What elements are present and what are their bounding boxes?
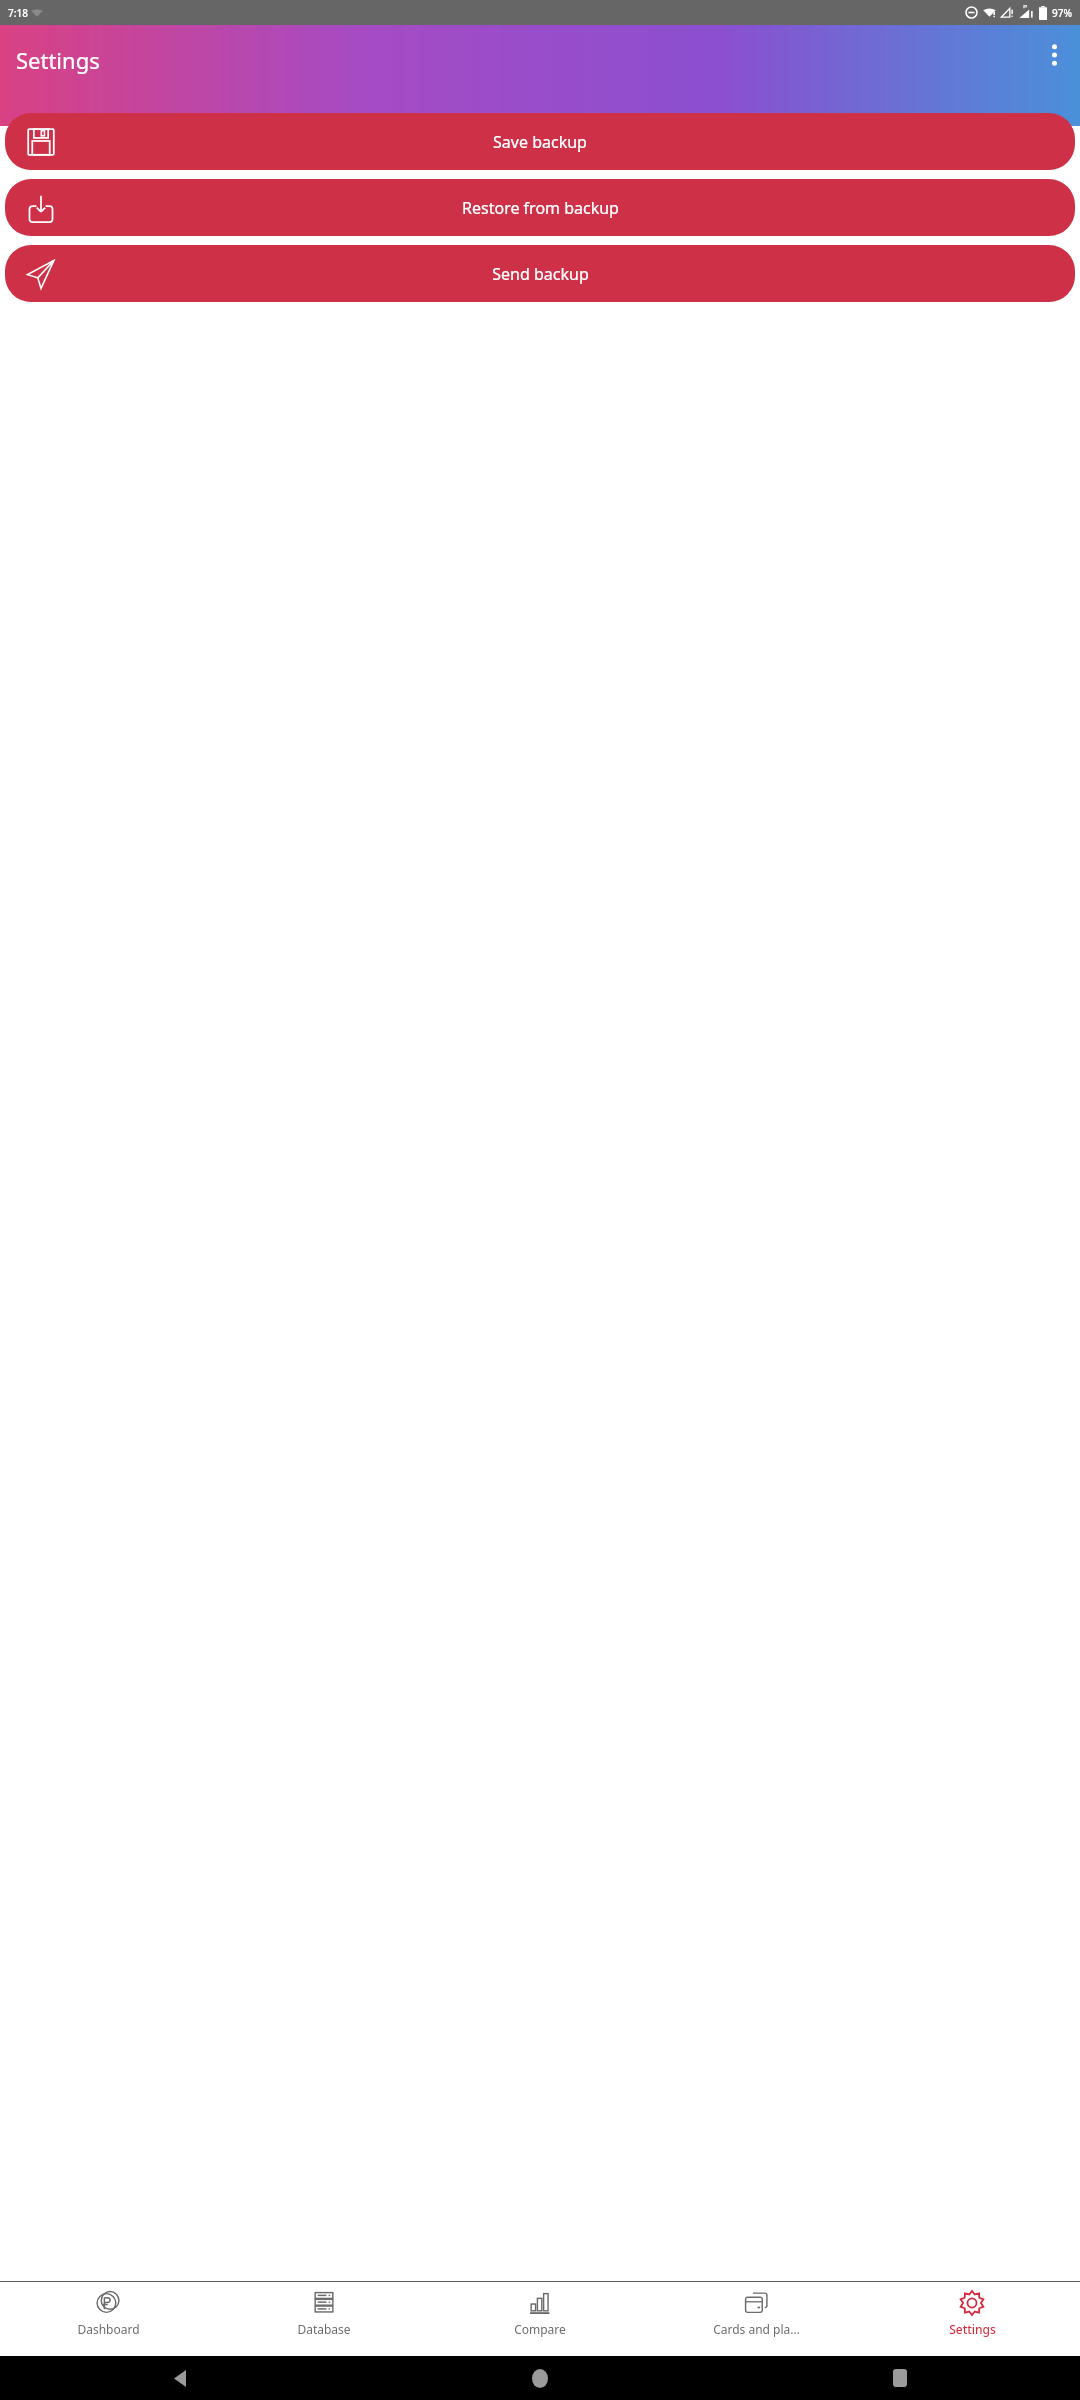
staticText: Restore from backup	[462, 197, 619, 219]
staticText: Settings	[16, 45, 100, 75]
button[interactable]: More options	[1030, 31, 1078, 79]
button[interactable]: Settings	[864, 2282, 1080, 2356]
staticText: Settings	[949, 2321, 996, 2337]
button[interactable]: Compare	[432, 2282, 648, 2356]
staticText: 97%	[1052, 6, 1072, 20]
button[interactable]: Database	[216, 2282, 432, 2356]
staticText: Save backup	[493, 131, 587, 153]
button[interactable]: Send backup	[5, 245, 1075, 302]
staticText: Dashboard	[77, 2321, 140, 2337]
button[interactable]: Restore from backup	[5, 179, 1075, 236]
button[interactable]: Save backup	[5, 113, 1075, 170]
staticText: 7:18	[8, 6, 28, 20]
button[interactable]: Cards and pla…	[648, 2282, 864, 2356]
staticText: Database	[297, 2321, 351, 2337]
staticText: Cards and pla…	[713, 2321, 800, 2337]
staticText: Compare	[514, 2321, 566, 2337]
button[interactable]: Dashboard	[0, 2282, 216, 2356]
staticText: Send backup	[492, 263, 589, 285]
button[interactable]: Back	[163, 2361, 197, 2395]
button[interactable]: Recent apps	[883, 2361, 917, 2395]
button[interactable]: Home	[523, 2361, 557, 2395]
